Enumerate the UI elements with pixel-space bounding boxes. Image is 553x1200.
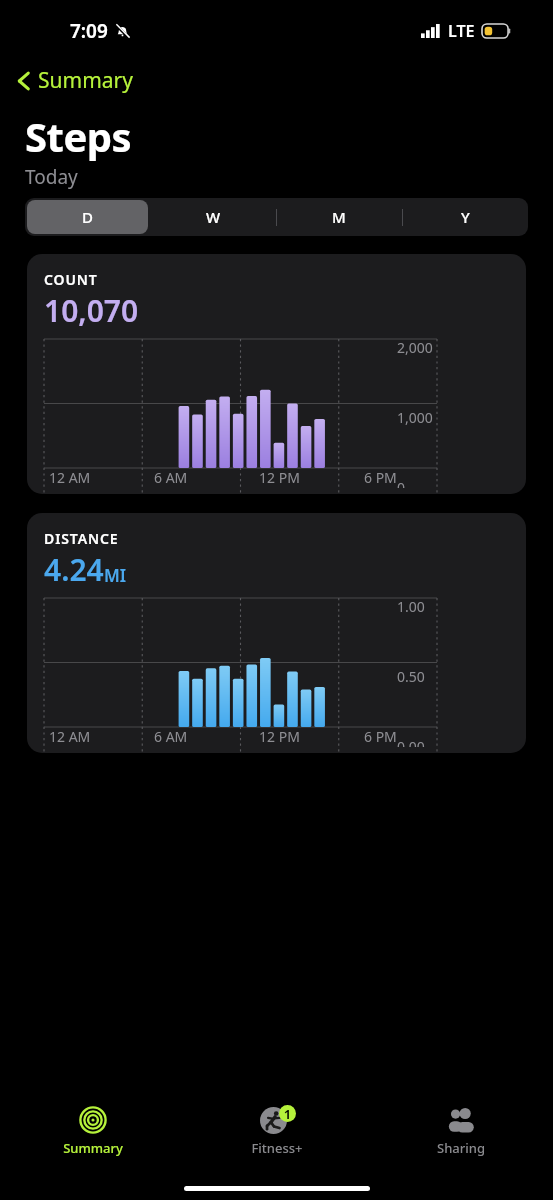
staticText: 2,000 xyxy=(397,338,433,357)
staticText: 6 PM xyxy=(364,468,397,487)
staticText: 12 AM xyxy=(49,468,91,487)
staticText: 12 PM xyxy=(259,468,300,487)
button[interactable]: COUNT xyxy=(27,254,526,494)
staticText: 12 PM xyxy=(259,727,300,746)
button[interactable]: 1 xyxy=(185,1100,369,1161)
button[interactable]: Y xyxy=(402,198,528,236)
staticText: 6 AM xyxy=(154,468,188,487)
staticText: 6 AM xyxy=(154,727,188,746)
button[interactable]: D xyxy=(25,198,150,236)
button[interactable]: Summary xyxy=(12,62,143,99)
staticText: 6 PM xyxy=(364,727,397,746)
staticText: Today xyxy=(25,164,78,190)
staticText: LTE xyxy=(448,20,475,42)
staticText: 10,070 xyxy=(44,290,139,331)
staticText: 0 xyxy=(397,478,406,488)
button[interactable]: M xyxy=(276,198,402,236)
staticText: 0.00 xyxy=(397,737,425,747)
staticText: Summary xyxy=(63,1139,123,1157)
staticText: Fitness+ xyxy=(251,1139,303,1157)
staticText: Steps xyxy=(25,109,132,163)
staticText: 1 xyxy=(284,1106,291,1122)
staticText: 1.00 xyxy=(397,597,425,616)
staticText: 7:09 xyxy=(70,18,108,44)
staticText: M xyxy=(332,207,346,227)
staticText: MI xyxy=(104,564,127,587)
button[interactable]: DISTANCE xyxy=(27,513,526,753)
staticText: 0.50 xyxy=(397,667,425,686)
staticText: Sharing xyxy=(437,1139,485,1157)
staticText: Summary xyxy=(38,66,133,95)
button[interactable]: Summary xyxy=(0,1100,185,1161)
staticText: W xyxy=(206,207,221,227)
button[interactable]: W xyxy=(150,198,276,236)
staticText: DISTANCE xyxy=(44,529,119,548)
button[interactable]: Sharing xyxy=(369,1100,553,1161)
staticText: COUNT xyxy=(44,270,98,289)
staticText: 4.24 xyxy=(44,549,104,590)
staticText: 1,000 xyxy=(397,408,433,427)
staticText: Y xyxy=(461,207,470,227)
staticText: D xyxy=(82,207,93,227)
staticText: 12 AM xyxy=(49,727,91,746)
